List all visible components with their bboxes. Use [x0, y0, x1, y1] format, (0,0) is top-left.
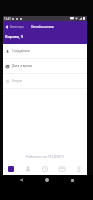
button[interactable]: Home [43, 176, 51, 184]
button[interactable]: Профиль [19, 162, 36, 175]
staticText: Сотрудники [12, 49, 30, 53]
staticText: Онлайн-запись [31, 25, 54, 29]
button[interactable]: Ещё [70, 162, 87, 175]
staticText: Услуга [12, 79, 22, 83]
button[interactable]: Дата и время [3, 59, 87, 74]
button[interactable]: Back [3, 21, 10, 32]
button[interactable]: Услуга [3, 74, 87, 89]
button[interactable]: Recents [68, 176, 76, 184]
staticText: Визитница [10, 25, 24, 29]
button[interactable]: Услуги [53, 162, 70, 175]
staticText: Работает на YCLIENTS [26, 154, 64, 159]
staticText: 13:41 [4, 17, 11, 21]
button[interactable]: Сотрудники [3, 44, 87, 59]
button[interactable]: Главная [3, 162, 19, 175]
staticText: Кирова, 9 [5, 34, 24, 39]
button[interactable]: Back [17, 176, 25, 184]
staticText: Дата и время [12, 64, 33, 68]
button[interactable]: Запись [36, 162, 53, 175]
